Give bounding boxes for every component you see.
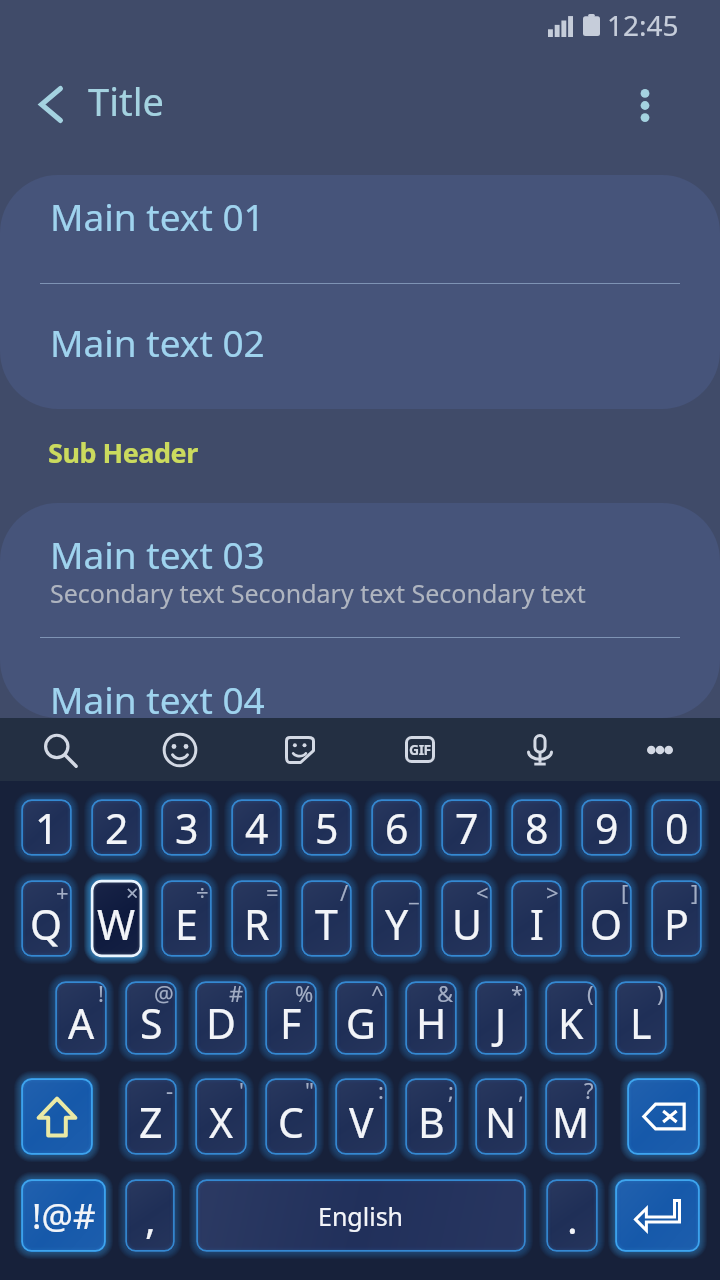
button[interactable]: O: [581, 880, 632, 957]
staticText: 4: [245, 800, 269, 856]
button[interactable]: Main text 02: [0, 285, 720, 409]
button[interactable]: W: [91, 880, 142, 957]
button[interactable]: Stickers: [240, 718, 360, 781]
staticText: A: [68, 995, 95, 1051]
button[interactable]: S: [125, 981, 177, 1055]
button[interactable]: B: [405, 1078, 457, 1155]
staticText: Title: [88, 75, 164, 127]
staticText: ?: [584, 1075, 594, 1105]
staticText: F: [280, 995, 302, 1051]
button[interactable]: .: [546, 1179, 598, 1252]
staticText: 12:45: [607, 6, 679, 44]
button[interactable]: Backspace: [627, 1078, 700, 1155]
button[interactable]: 9: [581, 799, 632, 856]
staticText: =: [266, 877, 279, 907]
button[interactable]: U: [441, 880, 492, 957]
staticText: L: [630, 995, 652, 1051]
staticText: ": [305, 1075, 314, 1105]
staticText: Main text 01: [50, 191, 265, 241]
button[interactable]: 5: [301, 799, 352, 856]
button[interactable]: H: [405, 981, 457, 1055]
staticText: 7: [455, 800, 479, 856]
button[interactable]: L: [615, 981, 667, 1055]
staticText: GIF: [409, 740, 431, 759]
button[interactable]: J: [475, 981, 527, 1055]
button[interactable]: 8: [511, 799, 562, 856]
button[interactable]: ,: [125, 1179, 175, 1252]
staticText: 2: [105, 800, 129, 856]
button[interactable]: 2: [91, 799, 142, 856]
button[interactable]: Enter: [615, 1179, 700, 1252]
button[interactable]: Z: [125, 1078, 177, 1155]
button[interactable]: GIF: [360, 718, 480, 781]
staticText: C: [278, 1094, 304, 1150]
button[interactable]: K: [545, 981, 597, 1055]
staticText: Q: [30, 896, 63, 952]
staticText: @: [154, 978, 174, 1008]
staticText: S: [140, 995, 163, 1051]
staticText: U: [452, 896, 482, 952]
staticText: J: [495, 995, 507, 1051]
button[interactable]: X: [195, 1078, 247, 1155]
button[interactable]: 6: [371, 799, 422, 856]
staticText: Secondary text Secondary text Secondary …: [50, 576, 586, 610]
staticText: /: [340, 877, 349, 907]
button[interactable]: Main text 01: [0, 175, 720, 283]
button[interactable]: Y: [371, 880, 422, 957]
staticText: #: [229, 978, 244, 1008]
button[interactable]: M: [545, 1078, 597, 1155]
staticText: !@#: [32, 1192, 96, 1240]
button[interactable]: 7: [441, 799, 492, 856]
staticText: D: [206, 995, 236, 1051]
button[interactable]: 3: [161, 799, 212, 856]
button[interactable]: Emoji: [120, 718, 240, 781]
staticText: 5: [315, 800, 339, 856]
button[interactable]: D: [195, 981, 247, 1055]
button[interactable]: 1: [21, 799, 72, 856]
button[interactable]: C: [265, 1078, 317, 1155]
staticText: (: [587, 978, 594, 1008]
button[interactable]: Back: [16, 68, 86, 140]
staticText: E: [175, 896, 198, 952]
button[interactable]: T: [301, 880, 352, 957]
button[interactable]: !@#: [21, 1179, 106, 1252]
button[interactable]: More: [600, 718, 720, 781]
staticText: +: [56, 877, 69, 907]
button[interactable]: Main text 03: [0, 503, 720, 637]
button[interactable]: Voice input: [480, 718, 600, 781]
staticText: >: [546, 877, 559, 907]
button[interactable]: Search: [0, 718, 120, 781]
staticText: _: [409, 877, 419, 907]
staticText: Z: [139, 1094, 163, 1150]
staticText: [: [621, 877, 629, 907]
button[interactable]: E: [161, 880, 212, 957]
button[interactable]: Shift: [21, 1078, 93, 1155]
button[interactable]: More options: [610, 70, 680, 140]
staticText: Y: [385, 896, 409, 952]
staticText: &: [437, 978, 454, 1008]
staticText: B: [418, 1094, 445, 1150]
button[interactable]: A: [55, 981, 107, 1055]
button[interactable]: F: [265, 981, 317, 1055]
staticText: :: [378, 1075, 384, 1105]
button[interactable]: Main text 04: [0, 639, 720, 718]
button[interactable]: Q: [21, 880, 72, 957]
staticText: R: [244, 896, 270, 952]
button[interactable]: G: [335, 981, 387, 1055]
button[interactable]: P: [651, 880, 702, 957]
staticText: M: [552, 1094, 590, 1150]
button[interactable]: I: [511, 880, 562, 957]
staticText: K: [558, 995, 584, 1051]
staticText: T: [315, 896, 338, 952]
staticText: H: [416, 995, 447, 1051]
staticText: G: [346, 995, 376, 1051]
button[interactable]: V: [335, 1078, 387, 1155]
staticText: ^: [371, 978, 384, 1008]
staticText: Main text 04: [50, 674, 265, 718]
button[interactable]: 0: [651, 799, 702, 856]
staticText: W: [97, 896, 136, 952]
button[interactable]: 4: [231, 799, 282, 856]
button[interactable]: R: [231, 880, 282, 957]
button[interactable]: English: [196, 1179, 526, 1252]
button[interactable]: N: [475, 1078, 527, 1155]
